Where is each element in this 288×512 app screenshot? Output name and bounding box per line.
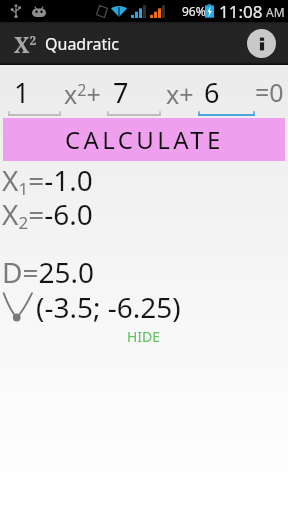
button[interactable]: 7 xyxy=(107,65,161,115)
staticText: x+ xyxy=(166,77,194,111)
button[interactable]: HIDE xyxy=(117,324,171,349)
button[interactable]: CALCULATE xyxy=(3,118,285,161)
staticText: D=25.0 xyxy=(2,253,95,291)
staticText: 1 xyxy=(14,74,30,111)
staticText: x2+ xyxy=(64,77,101,111)
staticText: X2 xyxy=(14,31,37,60)
staticText: 6 xyxy=(204,74,220,111)
staticText: 7 xyxy=(113,74,129,111)
staticText: 96% xyxy=(182,3,206,19)
staticText: 11:08 xyxy=(219,0,263,22)
button[interactable]: Info xyxy=(247,29,276,58)
button[interactable]: 1 xyxy=(8,65,61,115)
staticText: X1=-1.0 xyxy=(2,161,93,200)
staticText: Quadratic xyxy=(45,33,120,55)
staticText: X2=-6.0 xyxy=(2,195,93,234)
button[interactable]: 6 xyxy=(198,65,255,115)
staticText: AM xyxy=(266,4,285,20)
staticText: CALCULATE xyxy=(65,123,224,156)
staticText: =0 xyxy=(255,75,284,109)
staticText: (-3.5; -6.25) xyxy=(36,288,181,326)
staticText: HIDE xyxy=(127,327,161,346)
